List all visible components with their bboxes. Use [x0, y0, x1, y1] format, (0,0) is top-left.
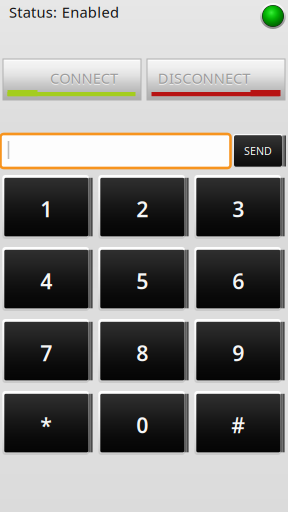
staticText: 9 [232, 339, 244, 367]
staticText: CONNECT [50, 69, 118, 89]
staticText: 4 [40, 267, 52, 295]
staticText: SEND [244, 144, 272, 158]
staticText: 5 [136, 267, 148, 295]
button[interactable]: CONNECT [3, 59, 141, 100]
staticText: * [40, 411, 52, 439]
button[interactable]: 8 [98, 319, 188, 383]
staticText: 2 [136, 195, 148, 223]
staticText: CONNECT [50, 68, 118, 88]
button[interactable]: * [2, 391, 92, 455]
staticText: 8 [136, 339, 148, 367]
staticText: 6 [232, 267, 244, 295]
staticText: DISCONNECT [158, 69, 250, 89]
button[interactable]: 6 [194, 247, 284, 311]
staticText: DISCONNECT [158, 68, 250, 88]
staticText: 7 [40, 339, 52, 367]
button[interactable]: 5 [98, 247, 188, 311]
staticText: 0 [136, 411, 148, 439]
staticText: # [231, 411, 245, 439]
button[interactable]: 3 [194, 175, 284, 239]
button[interactable]: # [194, 391, 284, 455]
button[interactable]: SEND [233, 134, 286, 168]
button[interactable]: DISCONNECT [147, 59, 285, 100]
button[interactable]: 0 [98, 391, 188, 455]
button[interactable]: 9 [194, 319, 284, 383]
staticText: 1 [40, 195, 52, 223]
button[interactable]: 4 [2, 247, 92, 311]
button[interactable]: 2 [98, 175, 188, 239]
button[interactable]: 7 [2, 319, 92, 383]
staticText: 3 [232, 195, 244, 223]
staticText: Status: Enabled [9, 2, 119, 22]
button[interactable]: Message to send [0, 134, 230, 168]
button[interactable]: 1 [2, 175, 92, 239]
